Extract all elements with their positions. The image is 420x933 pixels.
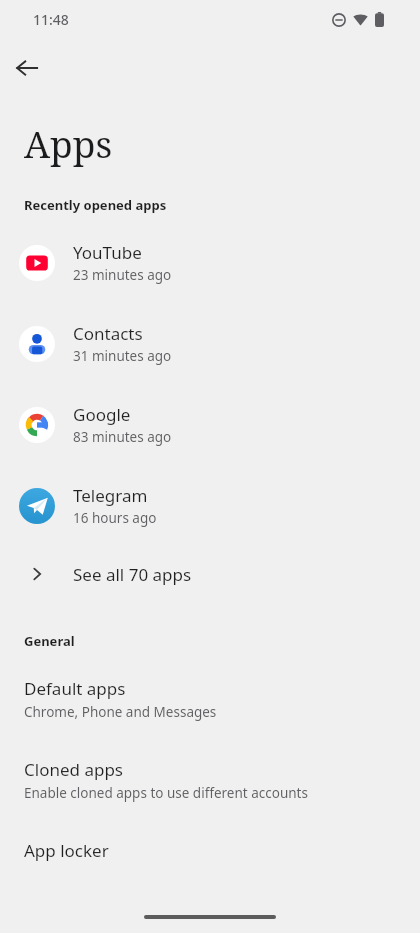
staticText: App locker — [24, 839, 109, 862]
staticText: Telegram — [73, 484, 148, 507]
staticText: 11:48 — [33, 10, 69, 29]
staticText: Cloned apps — [24, 758, 123, 781]
button[interactable]: Back — [5, 46, 49, 90]
staticText: Default apps — [24, 677, 126, 700]
staticText: YouTube — [73, 241, 142, 264]
staticText: General — [24, 632, 75, 650]
staticText: 16 hours ago — [73, 509, 157, 527]
button[interactable]: See all 70 apps — [0, 546, 420, 602]
staticText: Enable cloned apps to use different acco… — [24, 784, 308, 802]
button[interactable]: App locker — [0, 820, 420, 880]
staticText: Apps — [24, 118, 113, 168]
staticText: Recently opened apps — [24, 196, 167, 214]
staticText: Google — [73, 403, 131, 426]
staticText: 31 minutes ago — [73, 347, 172, 365]
button[interactable]: Contacts — [0, 303, 420, 384]
staticText: 83 minutes ago — [73, 428, 172, 446]
button[interactable]: Telegram — [0, 465, 420, 546]
staticText: Contacts — [73, 322, 143, 345]
staticText: 23 minutes ago — [73, 266, 172, 284]
button[interactable]: Google — [0, 384, 420, 465]
staticText: See all 70 apps — [73, 563, 192, 586]
button[interactable]: YouTube — [0, 222, 420, 303]
button[interactable]: Default apps — [0, 658, 420, 739]
staticText: Chrome, Phone and Messages — [24, 703, 217, 721]
button[interactable]: Cloned apps — [0, 739, 420, 820]
